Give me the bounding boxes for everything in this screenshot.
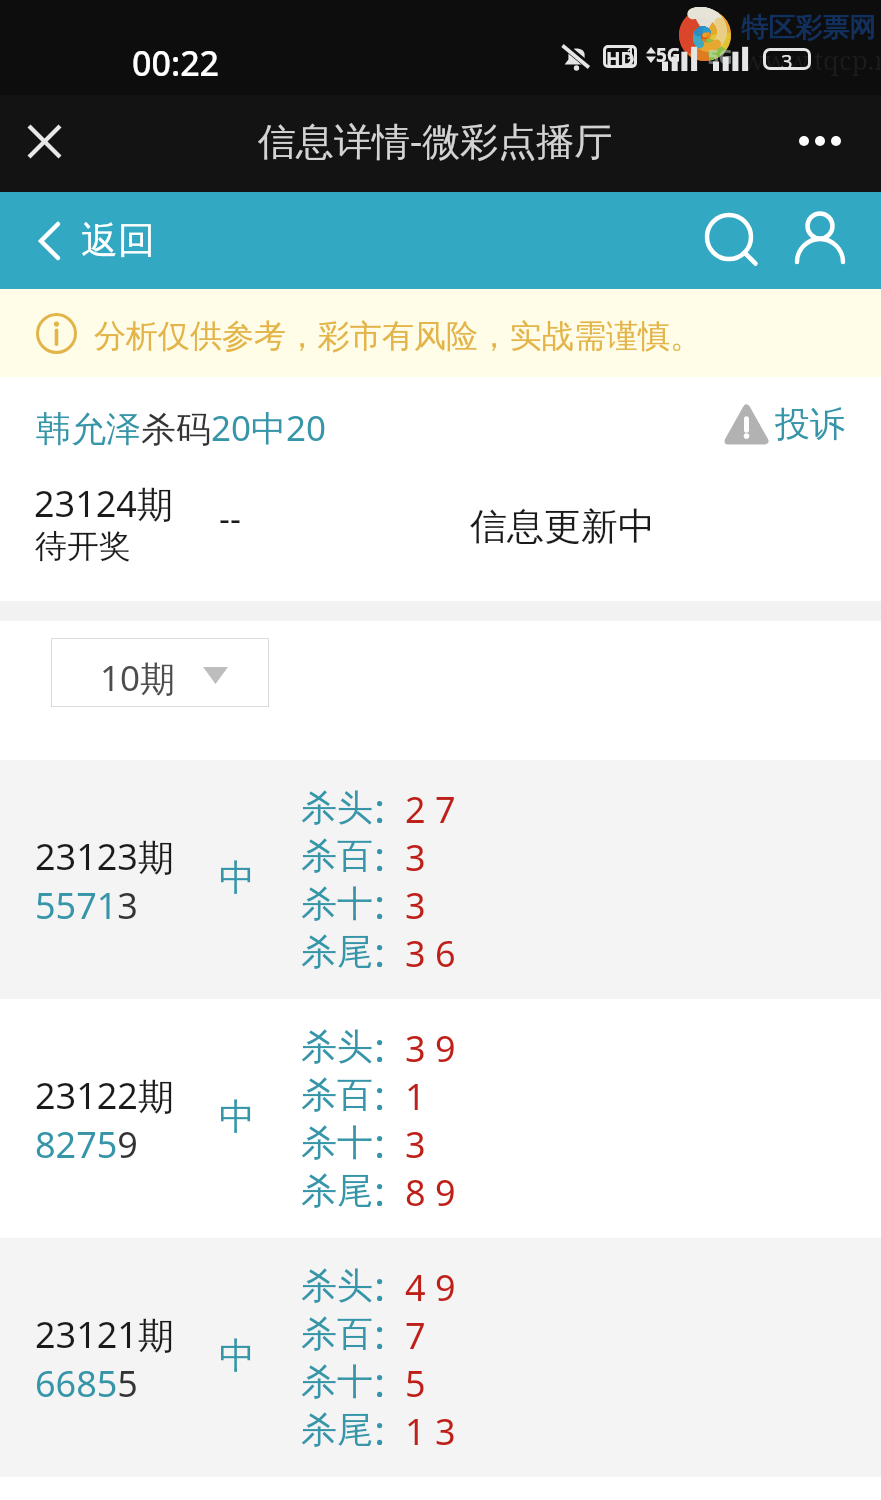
staticText: 2 bbox=[627, 53, 634, 69]
button[interactable]: 23121期 bbox=[0, 1238, 881, 1477]
staticText: 分析仅供参考，彩市有风险，实战需谨慎。 bbox=[94, 316, 702, 356]
staticText: 杀尾 bbox=[301, 929, 373, 974]
staticText: 00:22 bbox=[132, 40, 220, 86]
staticText: -- bbox=[219, 495, 241, 541]
staticText: 3 9 bbox=[405, 1024, 456, 1073]
staticText: 5G bbox=[708, 44, 733, 70]
staticText: 4 9 bbox=[405, 1263, 456, 1312]
button[interactable]: 10期 bbox=[51, 638, 269, 707]
staticText: 3 bbox=[405, 1120, 426, 1169]
staticText: 返回 bbox=[81, 217, 155, 264]
staticText: HD bbox=[606, 46, 635, 69]
staticText: 杀尾 bbox=[301, 1168, 373, 1213]
staticText: 5 bbox=[405, 1359, 426, 1408]
button[interactable]: 23122期 bbox=[0, 999, 881, 1238]
staticText: 23122期 bbox=[35, 1071, 174, 1120]
staticText: 杀十 bbox=[301, 1359, 373, 1404]
staticText: 3 bbox=[405, 881, 426, 930]
staticText: www.tqcp.net bbox=[742, 42, 881, 77]
staticText: 待开奖 bbox=[35, 526, 131, 566]
staticText: 杀头 bbox=[301, 1263, 373, 1308]
staticText: 3 bbox=[405, 833, 426, 882]
staticText: 中 bbox=[219, 1094, 255, 1139]
staticText: 5G bbox=[656, 42, 681, 68]
button[interactable]: Search bbox=[692, 205, 762, 275]
staticText: 7 bbox=[405, 1311, 426, 1360]
staticText: 1 bbox=[627, 44, 634, 60]
button[interactable]: Close bbox=[14, 111, 74, 171]
staticText: 3 6 bbox=[405, 929, 456, 978]
staticText: 杀百 bbox=[301, 833, 373, 878]
button[interactable]: More options bbox=[789, 112, 851, 169]
staticText: 1 bbox=[405, 1072, 426, 1121]
staticText: 杀头 bbox=[301, 785, 373, 830]
staticText: 中 bbox=[219, 855, 255, 900]
staticText: 82759 bbox=[35, 1120, 138, 1169]
button[interactable]: 投诉 bbox=[724, 400, 845, 448]
staticText: 3 bbox=[781, 48, 793, 70]
staticText: 1 3 bbox=[405, 1407, 456, 1456]
staticText: 杀百 bbox=[301, 1311, 373, 1356]
staticText: 杀百 bbox=[301, 1072, 373, 1117]
staticText: 杀十 bbox=[301, 881, 373, 926]
staticText: 信息详情-微彩点播厅 bbox=[258, 114, 613, 166]
staticText: 韩允泽杀码20中20 bbox=[36, 404, 327, 452]
staticText: 杀头 bbox=[301, 1024, 373, 1069]
staticText: 中 bbox=[219, 1333, 255, 1378]
staticText: 信息更新中 bbox=[470, 503, 655, 550]
staticText: 杀尾 bbox=[301, 1407, 373, 1452]
staticText: 8 9 bbox=[405, 1168, 456, 1217]
staticText: 23123期 bbox=[35, 832, 174, 881]
button[interactable]: Account bbox=[786, 203, 856, 273]
staticText: 55713 bbox=[35, 881, 138, 930]
staticText: 2 7 bbox=[405, 785, 456, 834]
staticText: 10期 bbox=[100, 654, 176, 702]
staticText: 特区彩票网 bbox=[741, 11, 876, 45]
staticText: 投诉 bbox=[775, 402, 845, 446]
button[interactable]: 23123期 bbox=[0, 760, 881, 999]
staticText: 23124期 bbox=[34, 479, 173, 528]
staticText: 杀十 bbox=[301, 1120, 373, 1165]
staticText: 23121期 bbox=[35, 1310, 174, 1359]
button[interactable]: 返回 bbox=[39, 192, 155, 289]
staticText: 66855 bbox=[35, 1359, 138, 1408]
